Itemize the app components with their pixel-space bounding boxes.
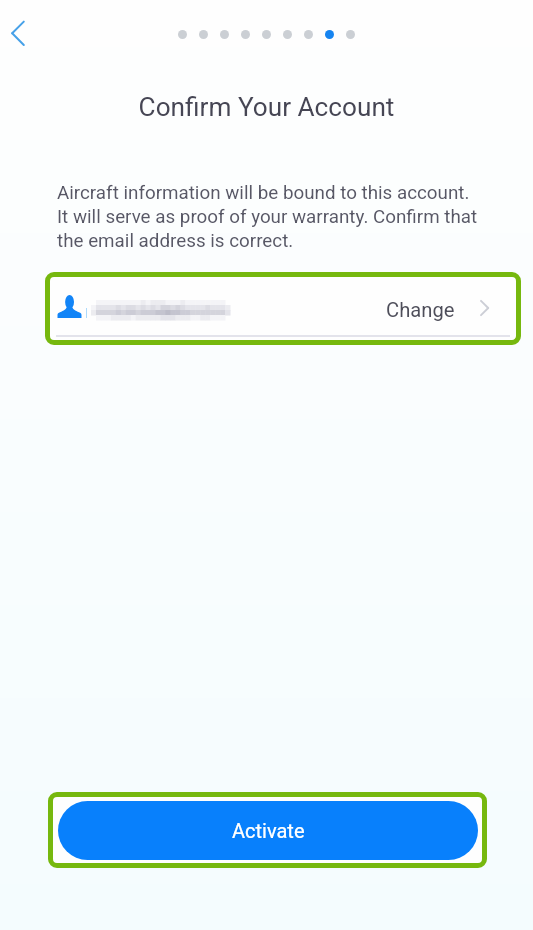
staticText: Aircraft information will be bound to th… [57,182,485,251]
staticText: Activate [232,819,305,842]
button[interactable]: Back [0,14,42,56]
staticText: Change [386,298,455,322]
staticText: Confirm Your Account [0,92,533,123]
button[interactable]: Activate [58,801,478,860]
button[interactable]: Change [50,277,516,340]
